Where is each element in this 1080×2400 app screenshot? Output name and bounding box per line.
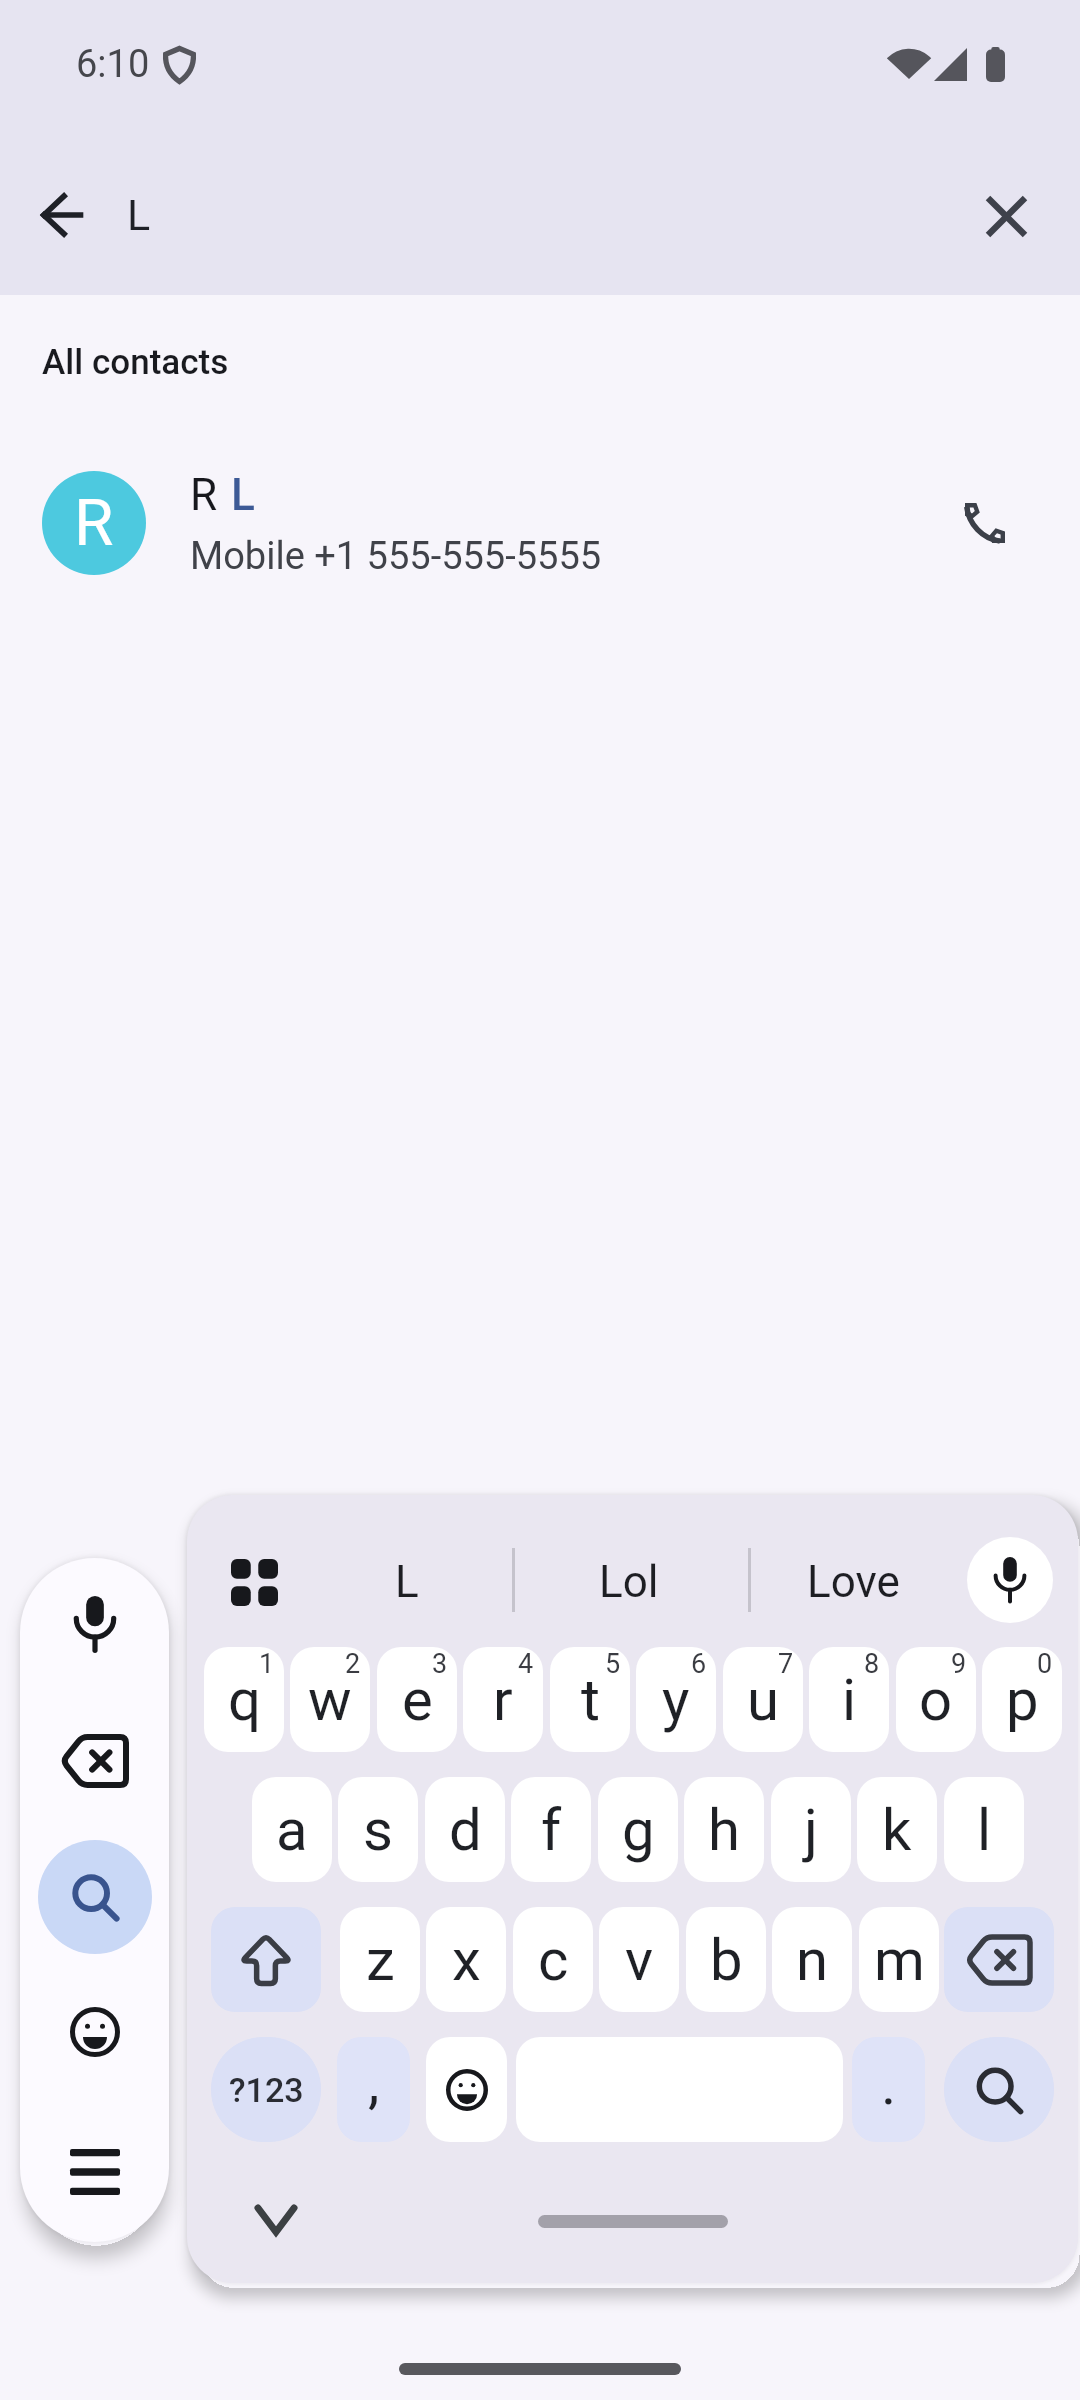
staticText: g <box>622 1796 655 1864</box>
staticText: h <box>708 1796 740 1864</box>
staticText: p <box>1006 1666 1039 1734</box>
button[interactable]: y <box>636 1647 716 1752</box>
button[interactable]: s <box>338 1777 418 1882</box>
button[interactable]: l <box>944 1777 1024 1882</box>
staticText: n <box>796 1926 829 1994</box>
staticText: y <box>662 1666 690 1734</box>
staticText: 3 <box>432 1648 448 1680</box>
button[interactable] <box>38 1840 152 1954</box>
staticText: 7 <box>778 1648 794 1680</box>
button[interactable]: g <box>598 1777 678 1882</box>
staticText: 8 <box>864 1648 880 1680</box>
staticText: s <box>363 1796 393 1864</box>
button[interactable] <box>944 2037 1054 2142</box>
button[interactable]: i <box>809 1647 889 1752</box>
button[interactable]: b <box>686 1907 766 2012</box>
staticText: f <box>541 1796 562 1864</box>
button[interactable] <box>231 1559 278 1606</box>
button[interactable]: t <box>550 1647 630 1752</box>
staticText: b <box>710 1926 743 1994</box>
button[interactable]: w <box>290 1647 370 1752</box>
button[interactable]: L <box>347 1556 467 1608</box>
button[interactable]: c <box>513 1907 593 2012</box>
button[interactable] <box>0 455 1080 591</box>
button[interactable]: n <box>772 1907 852 2012</box>
staticText: Lol <box>599 1556 659 1608</box>
staticText: All contacts <box>42 342 229 383</box>
staticText: 6:10 <box>76 42 150 87</box>
button[interactable]: r <box>463 1647 543 1752</box>
button[interactable] <box>258 2208 294 2232</box>
staticText: o <box>919 1666 953 1734</box>
staticText: k <box>882 1796 912 1864</box>
staticText: 0 <box>1037 1648 1053 1680</box>
staticText: R <box>190 469 218 521</box>
staticText: d <box>449 1796 482 1864</box>
staticText: R <box>74 486 114 561</box>
staticText: i <box>842 1666 857 1734</box>
button[interactable]: Lol <box>569 1556 689 1608</box>
button[interactable]: v <box>599 1907 679 2012</box>
staticText: a <box>276 1796 308 1864</box>
button[interactable] <box>988 198 1025 235</box>
staticText: 1 <box>259 1648 275 1680</box>
staticText: 9 <box>951 1648 967 1680</box>
staticText: 4 <box>518 1648 534 1680</box>
staticText: 5 <box>605 1648 621 1680</box>
button[interactable]: j <box>771 1777 851 1882</box>
button[interactable]: p <box>982 1647 1062 1752</box>
staticText: t <box>581 1666 600 1734</box>
staticText: 6 <box>691 1648 707 1680</box>
button[interactable]: a <box>252 1777 332 1882</box>
button[interactable]: h <box>684 1777 764 1882</box>
staticText: q <box>228 1666 261 1734</box>
staticText: Mobile +1 555-555-5555 <box>190 534 602 579</box>
button[interactable]: Love <box>793 1556 913 1608</box>
button[interactable]: e <box>377 1647 457 1752</box>
button[interactable]: ?123 <box>211 2037 321 2142</box>
staticText: , <box>368 2048 380 2116</box>
button[interactable] <box>961 499 1009 547</box>
button[interactable] <box>70 2149 120 2195</box>
button[interactable]: f <box>511 1777 591 1882</box>
staticText: z <box>366 1926 395 1994</box>
staticText: v <box>625 1926 654 1994</box>
staticText: 2 <box>345 1648 361 1680</box>
staticText: L <box>127 190 151 240</box>
staticText: ?123 <box>229 2070 304 2110</box>
button[interactable]: x <box>426 1907 506 2012</box>
staticText: Love <box>807 1556 900 1608</box>
button[interactable]: o <box>896 1647 976 1752</box>
staticText: L <box>231 469 255 521</box>
button[interactable]: k <box>857 1777 937 1882</box>
button[interactable] <box>426 2037 507 2142</box>
staticText: . <box>881 2050 897 2118</box>
staticText: e <box>402 1666 433 1734</box>
staticText: j <box>804 1796 818 1864</box>
button[interactable]: , <box>337 2037 410 2142</box>
button[interactable]: u <box>723 1647 803 1752</box>
staticText: r <box>493 1666 513 1734</box>
staticText: l <box>977 1796 992 1864</box>
button[interactable]: z <box>340 1907 420 2012</box>
staticText: L <box>395 1556 419 1608</box>
staticText: m <box>874 1926 925 1994</box>
button[interactable]: . <box>852 2037 925 2142</box>
button[interactable]: m <box>859 1907 939 2012</box>
button[interactable]: d <box>425 1777 505 1882</box>
button[interactable] <box>211 1907 321 2012</box>
button[interactable] <box>967 1537 1053 1623</box>
button[interactable] <box>43 194 85 236</box>
staticText: c <box>538 1926 569 1994</box>
button[interactable] <box>944 1907 1054 2012</box>
button[interactable]: q <box>204 1647 284 1752</box>
staticText: x <box>452 1926 481 1994</box>
staticText: w <box>308 1666 352 1734</box>
staticText: u <box>747 1666 779 1734</box>
